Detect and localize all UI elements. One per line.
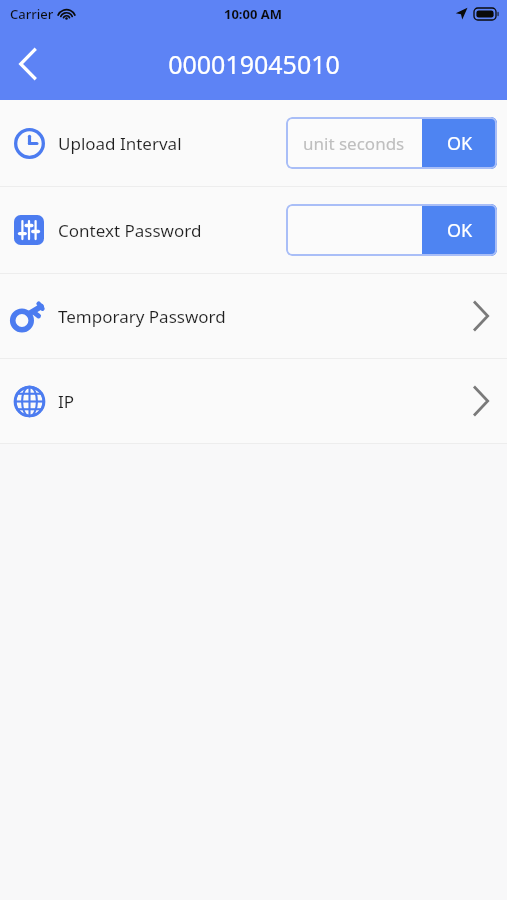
staticText: unit seconds	[303, 132, 405, 155]
button[interactable]: Upload Interval	[0, 100, 507, 186]
staticText: Upload Interval	[58, 132, 182, 155]
staticText: IP	[58, 390, 75, 413]
button[interactable]: IP	[0, 359, 507, 443]
button[interactable]: unit seconds	[286, 117, 422, 169]
staticText: OK	[447, 131, 473, 156]
staticText: Context Password	[58, 219, 202, 242]
button[interactable]: OK	[422, 117, 497, 169]
staticText: Temporary Password	[58, 305, 226, 328]
button[interactable]: Temporary Password	[0, 274, 507, 358]
button[interactable]: OK	[422, 204, 497, 256]
staticText: OK	[447, 218, 473, 243]
staticText: 10:00 AM	[224, 5, 283, 23]
button[interactable]: Context Password	[0, 187, 507, 273]
button[interactable]: Back	[0, 37, 54, 91]
button[interactable]	[286, 204, 422, 256]
staticText: Carrier	[10, 5, 54, 23]
staticText: 000019045010	[168, 47, 340, 81]
